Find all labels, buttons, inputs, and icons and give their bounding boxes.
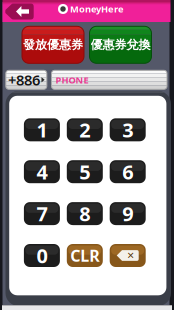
button[interactable]: 0 <box>24 244 60 267</box>
staticText: 發放優惠券 <box>23 37 83 52</box>
staticText: 3 <box>122 116 133 143</box>
button[interactable]: Delete <box>110 244 146 267</box>
button[interactable]: Back <box>4 3 34 20</box>
button[interactable]: 4 <box>24 160 60 183</box>
button[interactable]: 8 <box>67 202 103 225</box>
staticText: 7 <box>36 200 47 227</box>
button[interactable]: 3 <box>110 118 146 141</box>
staticText: 4 <box>36 158 47 185</box>
staticText: 5 <box>79 158 90 185</box>
button[interactable]: Phone number <box>51 70 167 89</box>
staticText: 8 <box>79 200 90 227</box>
staticText: 1 <box>36 116 47 143</box>
staticText: +886 <box>8 70 40 90</box>
button[interactable]: CLR <box>67 244 103 267</box>
button[interactable]: 優惠券兌換 <box>89 26 151 63</box>
staticText: ✕ <box>127 250 135 261</box>
button[interactable]: 5 <box>67 160 103 183</box>
staticText: 9 <box>122 200 133 227</box>
staticText: MoneyHere <box>70 3 124 15</box>
button[interactable]: 1 <box>24 118 60 141</box>
staticText: 2 <box>79 116 90 143</box>
button[interactable]: Country code +886 <box>6 70 47 89</box>
staticText: 0 <box>36 242 47 269</box>
staticText: CLR <box>70 245 99 266</box>
staticText: PHONE <box>55 74 88 86</box>
staticText: 6 <box>122 158 133 185</box>
staticText: 優惠券兌換 <box>90 37 150 52</box>
button[interactable]: 9 <box>110 202 146 225</box>
button[interactable]: 2 <box>67 118 103 141</box>
button[interactable]: 6 <box>110 160 146 183</box>
button[interactable]: 發放優惠券 <box>22 26 84 63</box>
button[interactable]: 7 <box>24 202 60 225</box>
